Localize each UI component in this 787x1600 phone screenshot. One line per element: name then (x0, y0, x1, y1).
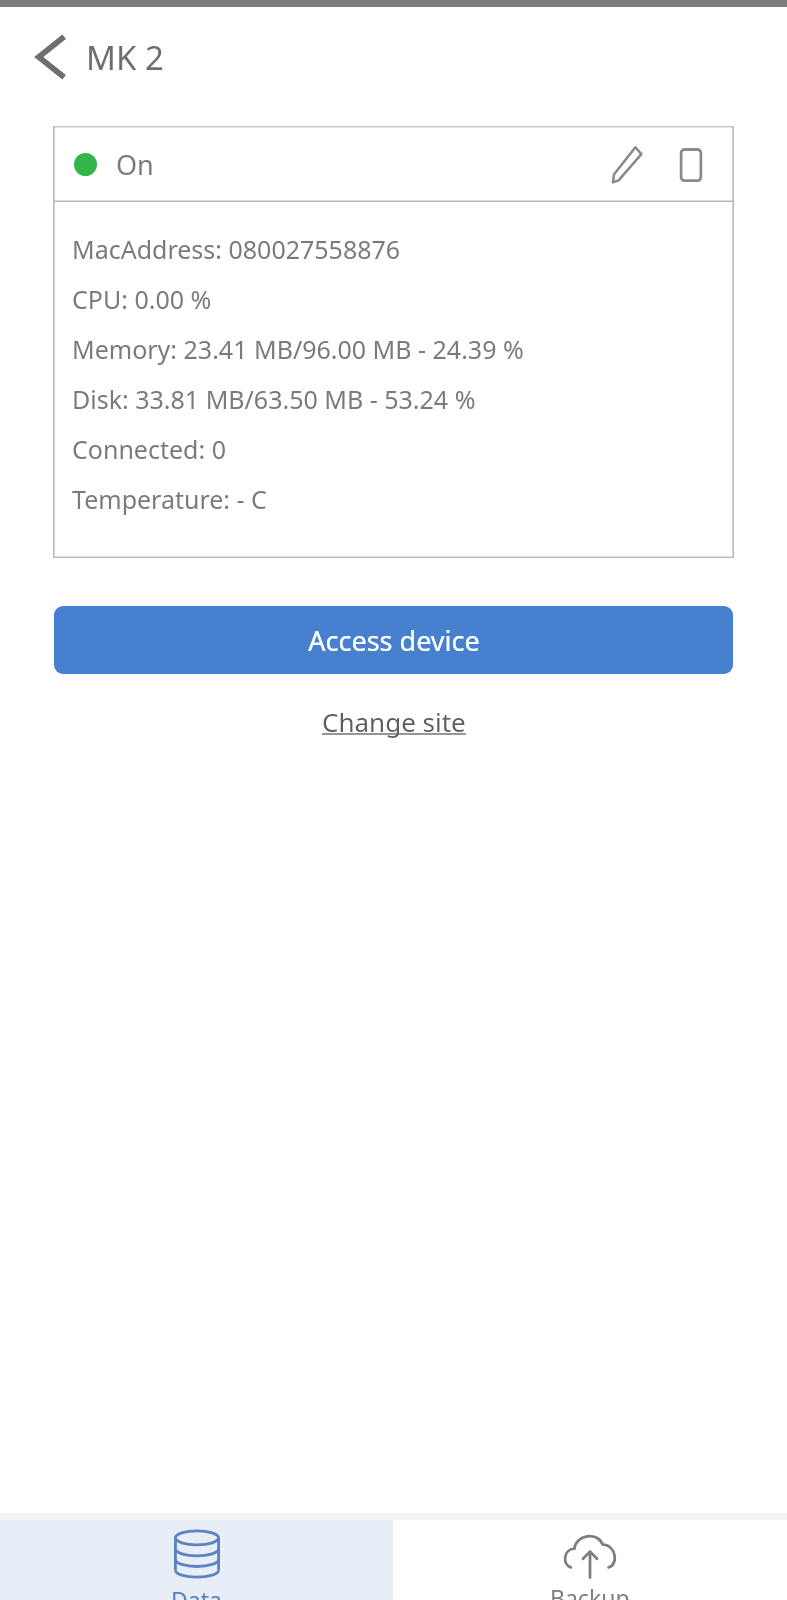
staticText: Change site (322, 704, 466, 739)
button[interactable]: Change site (310, 696, 478, 747)
staticText: Connected: 0 (72, 432, 226, 466)
button[interactable]: Delete (660, 133, 722, 195)
button[interactable]: Edit (596, 133, 658, 195)
staticText: Temperature: - C (72, 482, 267, 516)
button[interactable]: Backup (393, 1520, 787, 1600)
staticText: Data (171, 1584, 222, 1600)
staticText: Backup (550, 1582, 630, 1600)
button[interactable]: Access device (54, 606, 733, 674)
button[interactable]: Back (26, 32, 76, 82)
staticText: Memory: 23.41 MB/96.00 MB - 24.39 % (72, 332, 524, 366)
staticText: CPU: 0.00 % (72, 282, 212, 316)
staticText: MK 2 (86, 35, 164, 80)
staticText: Access device (308, 622, 480, 659)
staticText: Disk: 33.81 MB/63.50 MB - 53.24 % (72, 382, 476, 416)
button[interactable]: Data (0, 1520, 393, 1600)
staticText: On (116, 146, 154, 183)
staticText: MacAddress: 080027558876 (72, 232, 401, 266)
